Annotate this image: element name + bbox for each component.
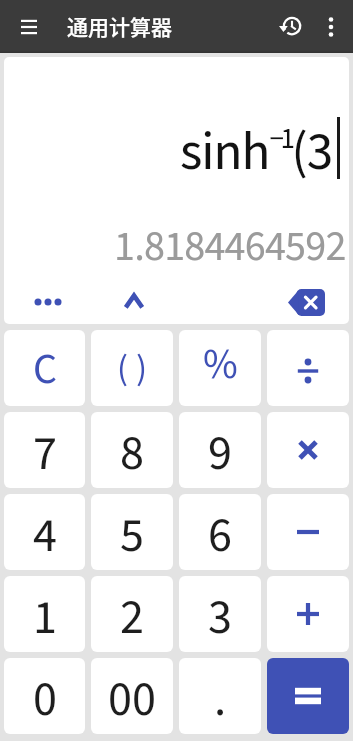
button[interactable]: [263, 285, 349, 319]
button[interactable]: 4: [4, 494, 85, 570]
staticText: 3: [208, 584, 232, 652]
button[interactable]: [4, 285, 91, 319]
button[interactable]: 3: [179, 576, 261, 652]
button[interactable]: 8: [91, 412, 173, 488]
staticText: 0: [33, 666, 57, 734]
button[interactable]: 00: [91, 658, 173, 734]
button[interactable]: 2: [91, 576, 173, 652]
staticText: 通用计算器: [67, 11, 172, 41]
staticText: C: [33, 340, 57, 400]
staticText: .: [214, 666, 227, 734]
staticText: 5: [120, 502, 144, 570]
button[interactable]: C: [4, 330, 85, 406]
staticText: sinh−1(3: [180, 115, 333, 190]
staticText: 1: [33, 584, 57, 652]
button[interactable]: (): [91, 330, 173, 406]
button[interactable]: .: [179, 658, 261, 734]
button[interactable]: [0, 0, 57, 53]
button[interactable]: 9: [179, 412, 261, 488]
staticText: 6: [208, 502, 232, 570]
button[interactable]: [267, 330, 349, 406]
button[interactable]: [267, 412, 349, 488]
staticText: 8: [120, 420, 144, 488]
button[interactable]: 0: [4, 658, 85, 734]
staticText: 4: [33, 502, 57, 570]
staticText: 2: [120, 584, 144, 652]
staticText: 00: [108, 666, 156, 734]
button[interactable]: [309, 0, 353, 53]
staticText: 1.8184464592: [114, 217, 346, 277]
button[interactable]: 1: [4, 576, 85, 652]
button[interactable]: [267, 576, 349, 652]
staticText: 7: [33, 420, 57, 488]
button[interactable]: [270, 0, 309, 53]
button[interactable]: %: [179, 330, 261, 406]
staticText: %: [203, 335, 238, 395]
staticText: 9: [208, 420, 232, 488]
button[interactable]: 7: [4, 412, 85, 488]
staticText: (): [117, 343, 156, 394]
button[interactable]: 5: [91, 494, 173, 570]
button[interactable]: [267, 658, 349, 734]
button[interactable]: [267, 494, 349, 570]
button[interactable]: 6: [179, 494, 261, 570]
button[interactable]: [91, 285, 177, 319]
